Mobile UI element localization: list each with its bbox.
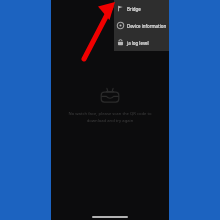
staticText: No watch face, please scan the QR code t… (62, 111, 158, 123)
other: Log level (117, 39, 124, 46)
button[interactable]: Bridge (114, 0, 169, 17)
button[interactable]: Log level (114, 34, 169, 51)
button[interactable]: Device information (114, 17, 169, 34)
other: Bridge (117, 5, 124, 12)
other: Device information (117, 22, 124, 29)
staticText: Bridge (127, 6, 141, 12)
staticText: ja log level (127, 40, 149, 46)
staticText: Device information (127, 23, 167, 29)
